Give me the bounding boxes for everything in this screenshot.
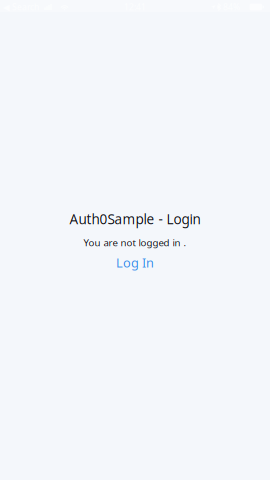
staticText: Auth0Sample - Login (69, 210, 200, 228)
staticText: You are not logged in . (83, 236, 186, 249)
button[interactable]: Log In (110, 253, 160, 272)
staticText: Log In (116, 254, 154, 271)
